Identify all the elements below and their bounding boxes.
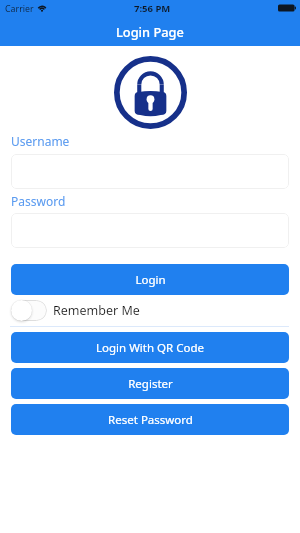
staticText: Remember Me: [53, 302, 140, 319]
staticText: Login With QR Code: [96, 340, 204, 356]
staticText: Username: [11, 133, 70, 149]
staticText: Register: [128, 376, 173, 392]
staticText: Carrier: [5, 3, 34, 15]
staticText: Login Page: [116, 23, 184, 40]
button[interactable]: Register: [11, 368, 289, 399]
staticText: Login: [135, 272, 166, 288]
staticText: Reset Password: [108, 412, 193, 428]
other: Wi-Fi: [37, 4, 47, 11]
other: App logo: [114, 56, 187, 129]
button[interactable]: Login With QR Code: [11, 332, 289, 363]
button[interactable]: Login Page: [0, 21, 300, 41]
button[interactable]: Text field: [11, 154, 289, 189]
staticText: Password: [11, 193, 66, 209]
staticText: 7:56 PM: [134, 2, 171, 15]
button[interactable]: Login: [11, 264, 289, 295]
button[interactable]: Remember Me toggle: [11, 300, 47, 321]
button[interactable]: Reset Password: [11, 404, 289, 435]
button[interactable]: Text field: [11, 213, 289, 248]
